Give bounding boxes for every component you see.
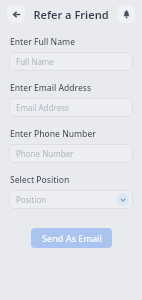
- staticText: Position: [16, 194, 47, 205]
- button[interactable]: Notifications: [117, 5, 135, 23]
- staticText: Send As Email: [42, 232, 102, 244]
- button[interactable]: Position: [9, 190, 133, 209]
- staticText: Phone Number: [16, 148, 74, 159]
- button[interactable]: Back: [7, 5, 25, 23]
- staticText: Refer a Friend: [33, 7, 109, 22]
- button[interactable]: Email Address: [9, 98, 133, 117]
- staticText: Enter Full Name: [10, 36, 76, 48]
- staticText: Full Name: [16, 56, 54, 67]
- staticText: Enter Email Address: [10, 82, 92, 94]
- staticText: Email Address: [16, 102, 69, 113]
- button[interactable]: Send As Email: [31, 228, 112, 248]
- staticText: Select Position: [10, 174, 70, 186]
- button[interactable]: Full Name: [9, 52, 133, 71]
- staticText: Enter Phone Number: [10, 128, 96, 140]
- other: Open position list: [116, 193, 129, 206]
- button[interactable]: Phone Number: [9, 144, 133, 163]
